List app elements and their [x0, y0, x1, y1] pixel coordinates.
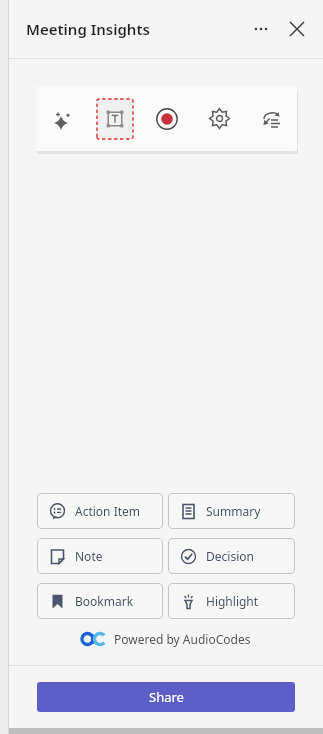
staticText: Powered by AudioCodes — [114, 631, 251, 647]
staticText: Action Item — [75, 503, 141, 519]
staticText: Meeting Insights — [26, 19, 150, 39]
staticText: Summary — [206, 503, 261, 519]
staticText: Decision — [206, 548, 254, 564]
staticText: Bookmark — [75, 593, 134, 609]
button[interactable]: Summary — [168, 493, 295, 529]
button[interactable]: Highlight — [168, 583, 295, 619]
button[interactable]: Record — [141, 86, 193, 151]
button[interactable]: Decision — [168, 538, 295, 574]
button[interactable]: Recap — [245, 86, 297, 151]
button[interactable]: Text — [89, 86, 141, 151]
button[interactable]: Close — [281, 13, 313, 45]
staticText: Note — [75, 548, 103, 564]
button[interactable]: Bookmark — [37, 583, 163, 619]
button[interactable]: More options — [245, 13, 277, 45]
button[interactable]: Note — [37, 538, 163, 574]
staticText: Share — [149, 688, 184, 706]
button[interactable]: Action Item — [37, 493, 163, 529]
staticText: Highlight — [206, 593, 259, 609]
button[interactable]: Share — [37, 682, 295, 712]
button[interactable]: Settings — [193, 86, 245, 151]
button[interactable]: AI insights — [36, 86, 89, 151]
